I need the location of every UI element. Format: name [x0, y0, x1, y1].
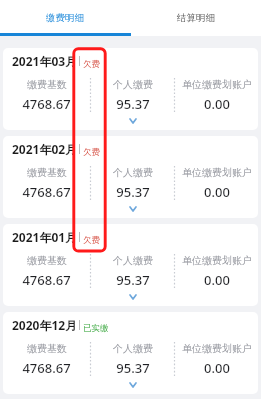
staticText: 0.00 [204, 183, 230, 201]
staticText: 个人缴费 [113, 78, 153, 91]
staticText: 缴费基数 [27, 254, 67, 267]
staticText: 缴费基数 [27, 166, 67, 179]
staticText: 95.37 [116, 95, 150, 113]
staticText: 2020年12月 [12, 317, 78, 333]
button[interactable]: 2020年12月 [3, 312, 258, 394]
staticText: 已实缴 [83, 323, 109, 334]
button[interactable]: 2021年01月 [3, 224, 258, 306]
staticText: 4768.67 [22, 183, 71, 201]
staticText: 缴费基数 [27, 342, 67, 355]
button[interactable]: 2021年02月 [3, 136, 258, 218]
button[interactable]: 2021年03月 [3, 48, 258, 130]
staticText: 欠费 [83, 147, 100, 158]
staticText: 单位缴费划账户 [182, 254, 252, 267]
staticText: 2021年03月 [12, 53, 78, 69]
staticText: 个人缴费 [113, 342, 153, 355]
staticText: 95.37 [116, 271, 150, 289]
staticText: 单位缴费划账户 [182, 166, 252, 179]
staticText: 0.00 [204, 95, 230, 113]
staticText: 个人缴费 [113, 254, 153, 267]
staticText: 单位缴费划账户 [182, 78, 252, 91]
staticText: 95.37 [116, 359, 150, 377]
staticText: 2021年01月 [12, 229, 78, 245]
staticText: 缴费明细 [46, 12, 84, 24]
staticText: 欠费 [83, 235, 100, 246]
staticText: 4768.67 [22, 359, 71, 377]
staticText: 个人缴费 [113, 166, 153, 179]
staticText: 欠费 [83, 59, 100, 70]
staticText: 4768.67 [22, 271, 71, 289]
staticText: 95.37 [116, 183, 150, 201]
staticText: 结算明细 [177, 12, 215, 24]
staticText: 2021年02月 [12, 141, 78, 157]
staticText: 0.00 [204, 271, 230, 289]
staticText: 单位缴费划账户 [182, 342, 252, 355]
button[interactable]: 结算明细 [130, 0, 261, 36]
staticText: 缴费基数 [27, 78, 67, 91]
button[interactable]: 缴费明细 [0, 0, 130, 36]
staticText: 0.00 [204, 359, 230, 377]
staticText: 4768.67 [22, 95, 71, 113]
